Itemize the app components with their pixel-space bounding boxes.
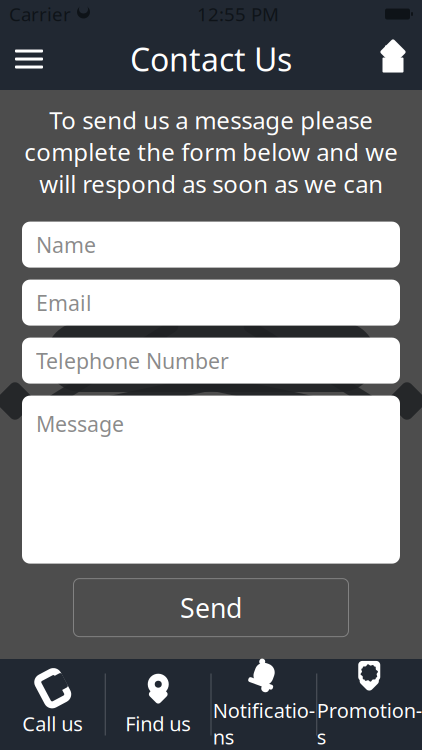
- staticText: Email: [36, 288, 92, 317]
- staticText: Telephone Number: [36, 346, 229, 375]
- button[interactable]: Notifications: [211, 659, 316, 750]
- staticText: Notifications: [213, 697, 315, 750]
- staticText: Send: [180, 590, 242, 625]
- button[interactable]: Find us: [105, 659, 211, 750]
- button[interactable]: Send: [73, 579, 348, 637]
- button[interactable]: Promotions: [316, 659, 422, 750]
- staticText: Promotions: [317, 697, 422, 750]
- staticText: To send us a message please complete the…: [24, 104, 398, 200]
- button[interactable]: Email: [22, 280, 400, 326]
- button[interactable]: Home: [364, 28, 422, 90]
- staticText: 12:55 PM: [197, 2, 279, 26]
- staticText: Contact Us: [130, 38, 292, 80]
- button[interactable]: Name: [22, 222, 400, 268]
- staticText: Find us: [125, 710, 191, 737]
- button[interactable]: Call us: [0, 659, 105, 750]
- staticText: Name: [36, 230, 96, 259]
- button[interactable]: Menu: [0, 28, 58, 90]
- button[interactable]: Message: [22, 396, 400, 564]
- staticText: Call us: [22, 710, 83, 737]
- button[interactable]: Telephone Number: [22, 338, 400, 384]
- staticText: Message: [36, 410, 124, 438]
- staticText: Carrier: [9, 2, 71, 26]
